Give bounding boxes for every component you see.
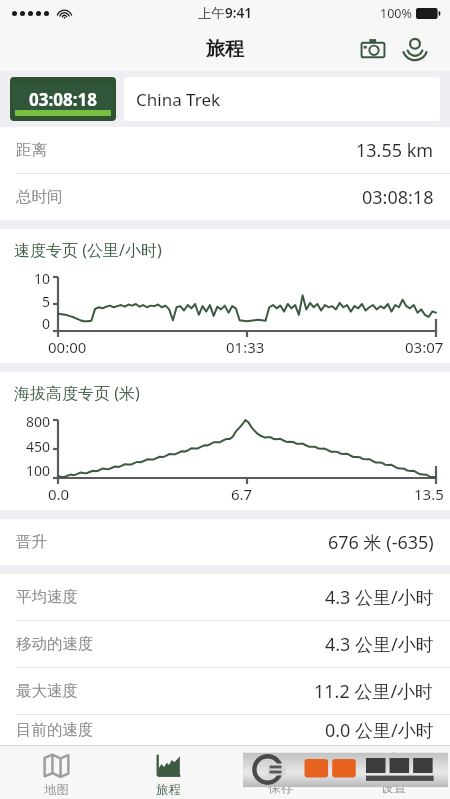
- staticText: 总时间: [16, 187, 63, 207]
- button[interactable]: 旅程: [112, 746, 224, 799]
- staticText: 5: [41, 292, 50, 311]
- button[interactable]: 最大速度: [0, 668, 450, 715]
- staticText: 最大速度: [16, 681, 78, 701]
- button[interactable]: 距离: [0, 127, 450, 174]
- staticText: 03:08:18: [362, 185, 434, 210]
- staticText: 4.3 公里/小时: [325, 585, 434, 610]
- staticText: 100%: [380, 5, 412, 22]
- staticText: 13.5: [414, 484, 444, 504]
- staticText: 旅程: [206, 37, 244, 61]
- staticText: 800: [25, 412, 50, 431]
- button[interactable]: Share location: [394, 28, 436, 70]
- staticText: 03:08:18: [29, 88, 97, 111]
- button[interactable]: 移动的速度: [0, 621, 450, 668]
- staticText: China Trek: [136, 88, 221, 111]
- button[interactable]: 地图: [0, 746, 112, 799]
- staticText: 旅程: [156, 782, 181, 798]
- staticText: 0: [41, 314, 50, 333]
- staticText: 设置: [381, 780, 406, 796]
- button[interactable]: 设置: [337, 746, 450, 799]
- staticText: 0.0: [48, 484, 70, 504]
- button[interactable]: Camera: [352, 28, 394, 70]
- staticText: 00:00: [48, 337, 87, 357]
- staticText: 11.2 公里/小时: [314, 679, 434, 704]
- staticText: 4.3 公里/小时: [325, 632, 434, 657]
- button[interactable]: 晋升: [0, 519, 450, 565]
- button[interactable]: 平均速度: [0, 574, 450, 621]
- staticText: 03:07: [405, 337, 444, 357]
- button[interactable]: 03:08:18: [10, 77, 116, 121]
- staticText: 距离: [16, 140, 47, 160]
- staticText: 0.0 公里/小时: [325, 718, 434, 743]
- button[interactable]: 目前的速度: [0, 715, 450, 745]
- staticText: 速度专页 (公里/小时): [14, 239, 162, 261]
- staticText: 100: [25, 461, 50, 480]
- button[interactable]: 保存: [224, 746, 337, 799]
- staticText: 地图: [44, 782, 69, 798]
- staticText: 海拔高度专页 (米): [14, 382, 140, 404]
- button[interactable]: 总时间: [0, 174, 450, 220]
- staticText: 上午9:41: [198, 4, 252, 22]
- staticText: 晋升: [16, 532, 47, 552]
- button[interactable]: 海拔高度专页 (米): [0, 372, 450, 510]
- staticText: 目前的速度: [16, 720, 94, 740]
- staticText: 450: [25, 437, 50, 456]
- button[interactable]: China Trek: [124, 77, 440, 121]
- staticText: 6.7: [231, 484, 253, 504]
- staticText: 平均速度: [16, 587, 78, 607]
- staticText: 676 米 (-635): [328, 530, 434, 555]
- staticText: 01:33: [226, 337, 265, 357]
- staticText: 移动的速度: [16, 634, 94, 654]
- staticText: 13.55 km: [356, 138, 434, 163]
- staticText: 10: [33, 269, 50, 288]
- button[interactable]: 速度专页 (公里/小时): [0, 229, 450, 363]
- staticText: 保存: [268, 780, 293, 796]
